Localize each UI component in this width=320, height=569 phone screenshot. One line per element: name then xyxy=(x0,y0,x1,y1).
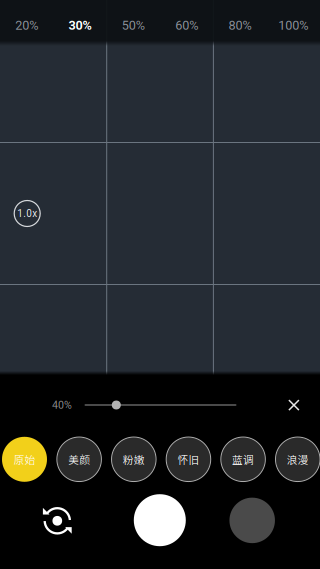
staticText: 50% xyxy=(122,18,145,33)
staticText: 美颜 xyxy=(68,452,90,467)
button[interactable]: 怀旧 xyxy=(166,437,211,482)
staticText: 30% xyxy=(68,18,91,33)
button[interactable]: Gallery xyxy=(223,491,281,549)
button[interactable]: Shutter xyxy=(127,487,193,553)
button[interactable]: 30% xyxy=(53,5,107,46)
button[interactable]: 20% xyxy=(0,5,53,46)
staticText: 原始 xyxy=(13,452,35,467)
button[interactable]: Close xyxy=(277,388,311,422)
button[interactable]: 80% xyxy=(213,5,267,46)
staticText: 蓝调 xyxy=(232,452,254,467)
staticText: 40% xyxy=(52,399,72,411)
button[interactable]: 美颜 xyxy=(57,437,102,482)
staticText: 100% xyxy=(278,18,308,33)
button[interactable]: 粉嫩 xyxy=(111,437,156,482)
staticText: 60% xyxy=(175,18,198,33)
button[interactable]: 浪漫 xyxy=(275,437,320,482)
staticText: 80% xyxy=(228,18,251,33)
button[interactable]: 蓝调 xyxy=(221,437,266,482)
staticText: 怀旧 xyxy=(177,452,199,467)
staticText: 1.0x xyxy=(17,208,37,219)
staticText: 20% xyxy=(15,18,38,33)
button[interactable]: 50% xyxy=(107,5,160,46)
button[interactable]: Switch camera xyxy=(29,493,85,549)
button[interactable]: 原始 xyxy=(2,437,47,482)
button[interactable]: 60% xyxy=(160,5,213,46)
button[interactable]: 1.0x xyxy=(10,196,44,230)
button[interactable]: 100% xyxy=(267,5,320,46)
staticText: 粉嫩 xyxy=(123,452,145,467)
staticText: 浪漫 xyxy=(287,452,309,467)
